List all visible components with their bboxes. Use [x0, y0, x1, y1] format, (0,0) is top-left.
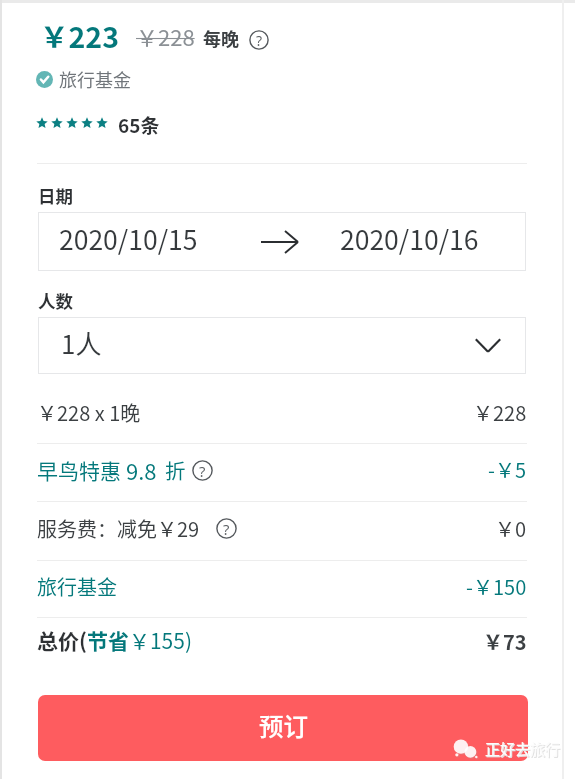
staticText: 早鸟特惠 [37, 455, 121, 485]
button[interactable]: More information [216, 518, 237, 539]
staticText: 旅行基金 [59, 66, 131, 92]
button[interactable]: 服务费：减免￥29 [37, 502, 527, 560]
button[interactable]: More information [249, 30, 269, 50]
staticText: 每晚 [203, 25, 239, 51]
staticText: 折 [165, 455, 186, 485]
staticText: 9.8 [126, 454, 157, 486]
staticText: ￥73 [483, 627, 527, 656]
staticText: 65条 [118, 111, 160, 139]
button[interactable]: Select guests [38, 317, 526, 374]
staticText: 2020/10/15 [59, 219, 198, 257]
staticText: 1人 [61, 324, 102, 362]
staticText: ￥228 x 1晚 [37, 398, 141, 427]
button[interactable]: 旅行基金 [36, 66, 131, 92]
button[interactable]: 65条 [36, 111, 160, 139]
staticText: ￥223 [40, 15, 119, 56]
staticText: ￥228 [136, 20, 195, 52]
staticText: -￥5 [488, 455, 527, 484]
staticText: 总价(节省￥155) [37, 625, 193, 655]
button[interactable]: 旅行基金 [37, 561, 527, 617]
staticText: -￥150 [466, 572, 527, 601]
button[interactable]: 预订 [38, 695, 528, 761]
button[interactable]: 早鸟特惠 [37, 444, 527, 501]
staticText: 正好去旅行 [486, 739, 562, 761]
staticText: 日期 [38, 183, 73, 208]
staticText: ￥0 [495, 514, 527, 543]
staticText: 旅行基金 [37, 572, 117, 601]
button[interactable]: 2020/10/15 [38, 212, 526, 271]
staticText: 2020/10/16 [340, 219, 479, 257]
staticText: ? [199, 461, 206, 481]
button[interactable]: ￥228 x 1晚 [37, 388, 527, 443]
staticText: ? [223, 519, 230, 539]
button[interactable]: More information [192, 460, 213, 481]
staticText: 人数 [38, 288, 73, 313]
staticText: 预订 [259, 708, 308, 743]
staticText: ? [256, 31, 263, 50]
staticText: 正好去旅行 [485, 738, 561, 760]
staticText: ￥228 [473, 398, 527, 427]
button[interactable]: 总价(节省￥155) [37, 618, 527, 678]
staticText: 服务费：减免￥29 [37, 514, 200, 543]
